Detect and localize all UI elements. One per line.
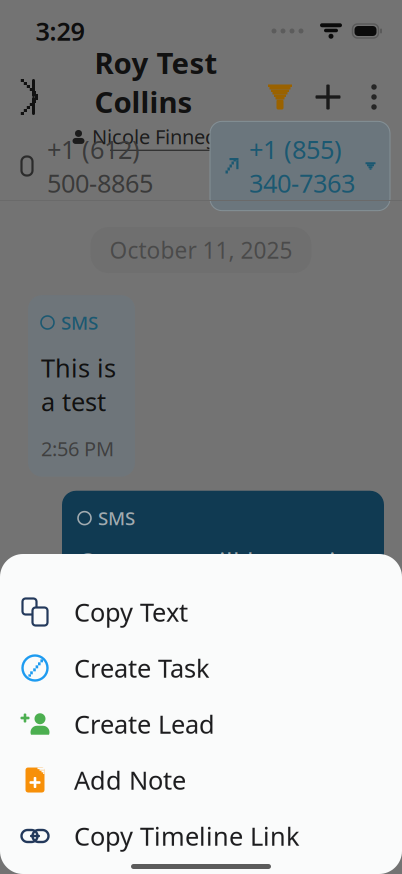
button[interactable]: More options [352,67,396,127]
staticText: Create Lead [74,707,215,741]
staticText: Nicole Finnegan [92,123,240,150]
staticText: Copy Text [74,595,188,629]
button[interactable]: Add Note [0,752,402,808]
button[interactable]: +1 (855) 340-7363 [210,121,390,211]
button[interactable]: Create Lead [0,696,402,752]
staticText: 3:29 [35,14,84,48]
staticText: Our team will be texting you back from t… [78,544,368,612]
staticText: 2:56 PM [78,663,151,690]
button[interactable]: Create Task [0,640,402,696]
staticText: number above. [78,615,260,648]
button[interactable]: Copy Timeline Link [0,808,402,864]
button[interactable]: +1 (612) 500-8865 [0,124,153,208]
staticText: Roy Test Collins [94,43,217,121]
staticText: This is a test [41,351,116,418]
staticText: 2:56 PM [41,435,114,462]
button[interactable]: Filter [256,67,304,127]
staticText: SMS [98,506,135,530]
staticText: Create Task [74,651,210,685]
staticText: +1 (855) 340-7363 [249,132,355,200]
staticText: SMS [61,310,98,335]
button[interactable]: Nicole Finnegan [72,123,240,151]
button[interactable]: Add [304,67,352,127]
staticText: Add Note [74,763,186,797]
staticText: +1 (612) 500-8865 [47,132,153,200]
staticText: October 11, 2025 [109,235,292,265]
button[interactable]: Copy Text [0,584,402,640]
button[interactable]: Back [0,67,56,127]
staticText: Copy Timeline Link [74,819,300,853]
